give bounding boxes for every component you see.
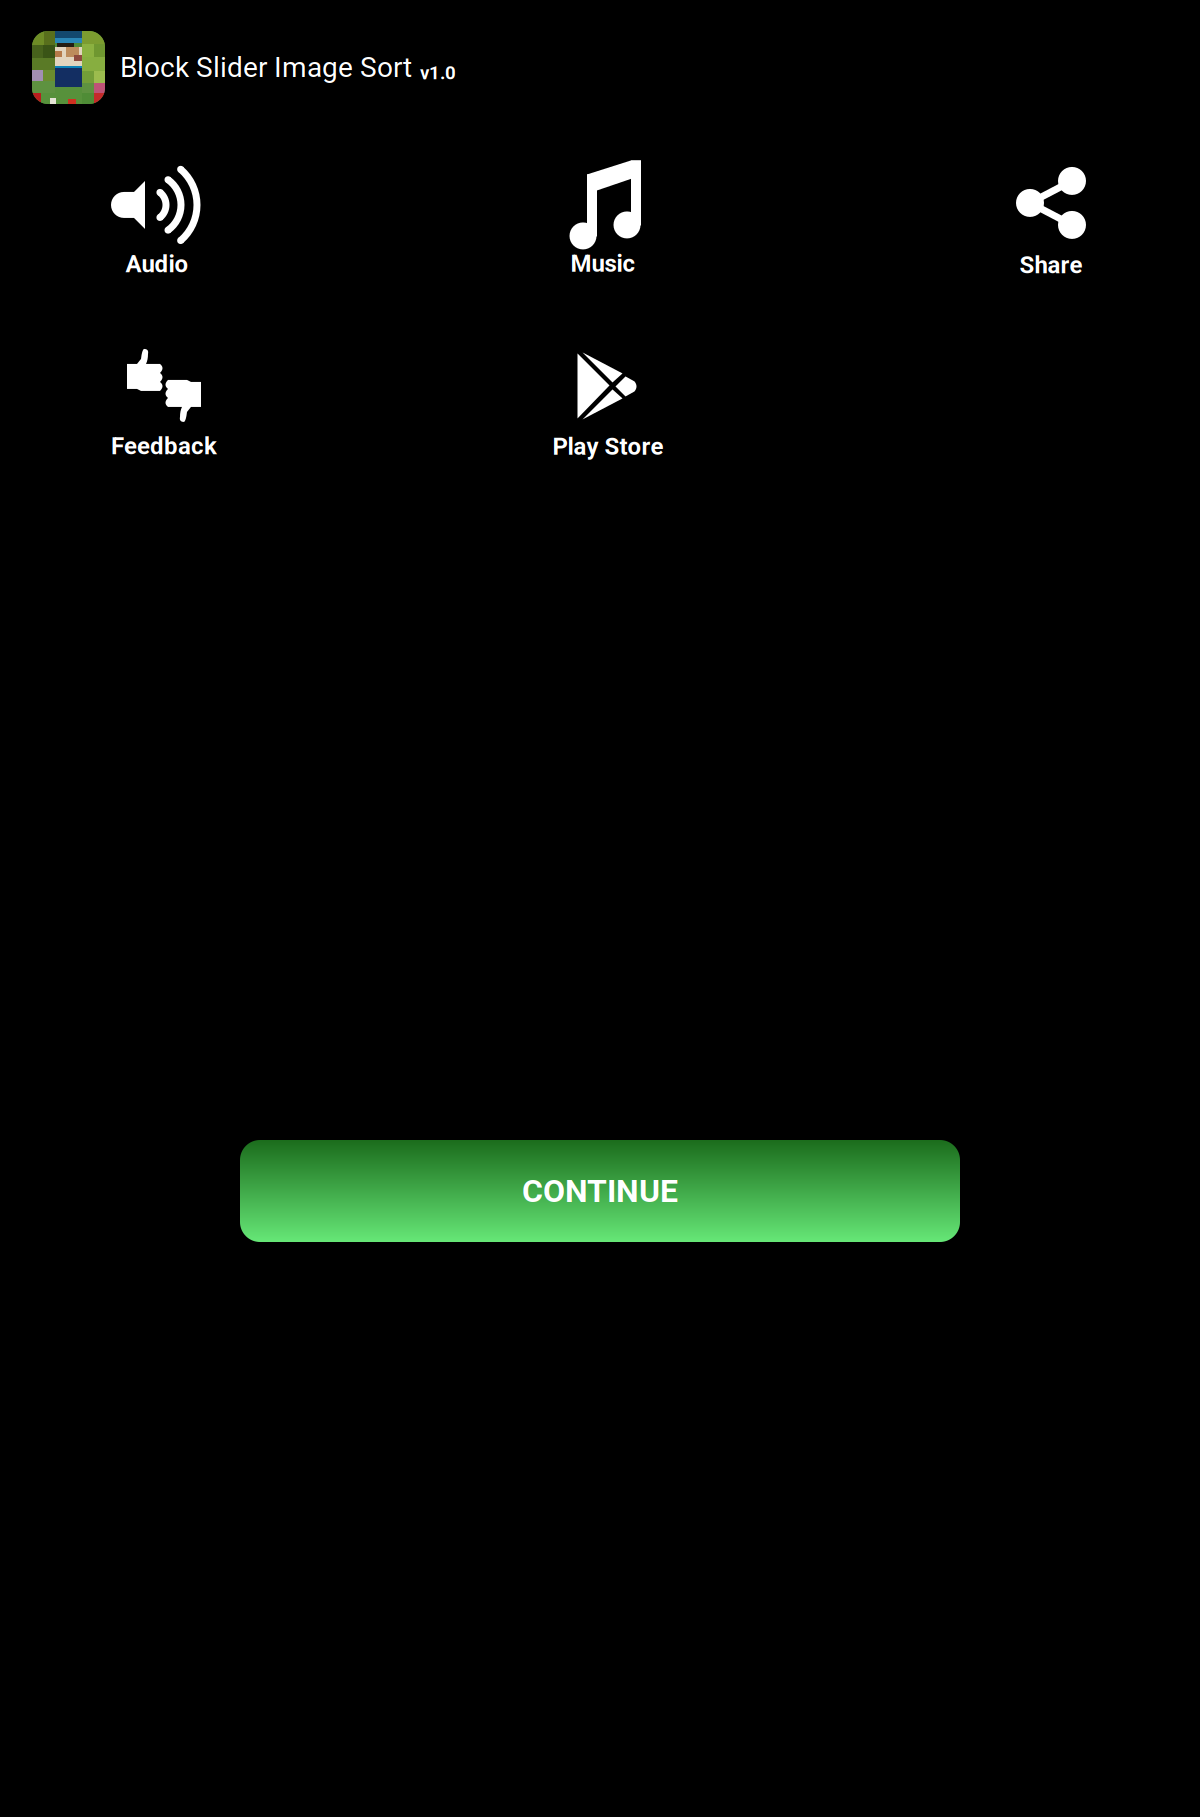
button[interactable]: Audio — [112, 168, 202, 278]
button[interactable]: CONTINUE — [240, 1140, 960, 1242]
staticText: CONTINUE — [522, 1172, 678, 1210]
staticText: Block Slider Image Sort — [120, 51, 412, 84]
button[interactable]: Play Store — [552, 353, 663, 460]
staticText: Play Store — [552, 432, 663, 460]
button[interactable]: Music — [565, 160, 641, 277]
staticText: v1.0 — [420, 62, 456, 84]
button[interactable]: Share — [1015, 167, 1087, 279]
staticText: Music — [570, 249, 635, 277]
button[interactable]: Feedback — [111, 348, 217, 460]
staticText: Share — [1019, 251, 1082, 279]
staticText: Feedback — [111, 432, 217, 460]
staticText: Audio — [125, 250, 188, 278]
